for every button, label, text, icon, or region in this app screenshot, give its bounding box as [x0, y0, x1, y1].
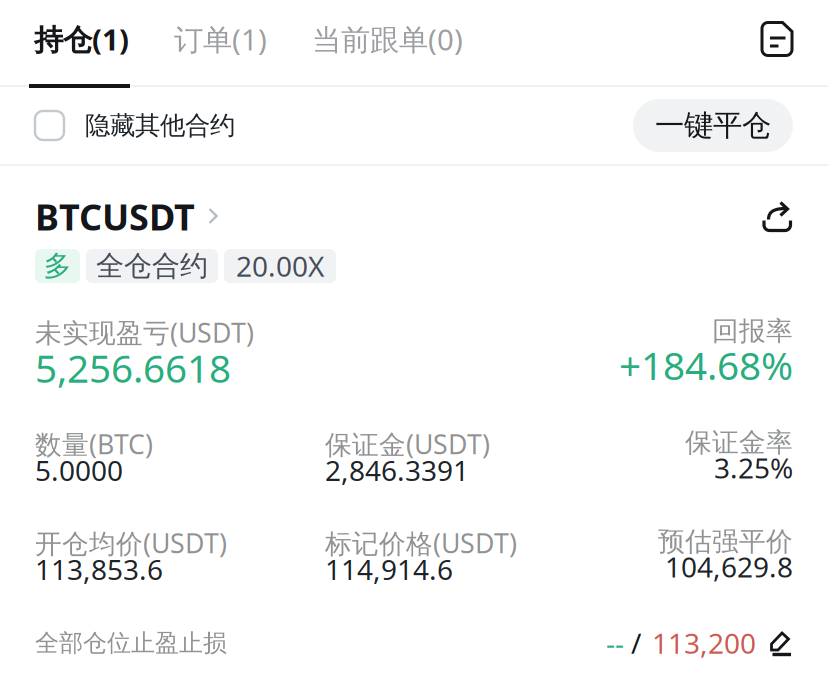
button[interactable]: Share	[762, 201, 793, 232]
staticText: 订单(1)	[174, 19, 267, 58]
staticText: 2,846.3391	[325, 452, 469, 489]
staticText: 数量(BTC)	[35, 426, 153, 462]
staticText: 全仓合约	[96, 249, 208, 283]
staticText: 104,629.8	[665, 548, 793, 585]
button[interactable]: --	[606, 624, 793, 662]
button[interactable]: 持仓(1)	[34, 19, 129, 58]
button[interactable]: 订单(1)	[174, 19, 267, 58]
staticText: BTCUSDT	[35, 193, 195, 240]
staticText: 保证金率	[685, 426, 793, 459]
staticText: 3.25%	[714, 449, 793, 486]
staticText: 回报率	[712, 315, 793, 347]
staticText: 113,853.6	[35, 551, 163, 588]
staticText: 预估强平价	[658, 525, 793, 558]
button[interactable]: 一键平仓	[633, 99, 793, 152]
button[interactable]: 当前跟单(0)	[312, 19, 463, 58]
staticText: 隐藏其他合约	[85, 110, 235, 141]
staticText: 20.00X	[236, 247, 324, 285]
staticText: 114,914.6	[325, 551, 453, 588]
staticText: 保证金(USDT)	[325, 426, 490, 462]
staticText: +184.68%	[619, 339, 793, 391]
staticText: 一键平仓	[655, 107, 771, 143]
button[interactable]: BTCUSDT	[35, 193, 219, 240]
staticText: 开仓均价(USDT)	[35, 525, 227, 561]
staticText: /	[631, 624, 641, 662]
staticText: 113,200	[652, 624, 756, 662]
staticText: 未实现盈亏(USDT)	[35, 315, 254, 350]
staticText: --	[606, 624, 624, 662]
staticText: 5.0000	[35, 452, 123, 489]
button[interactable]: 隐藏其他合约	[35, 110, 235, 141]
staticText: 当前跟单(0)	[312, 19, 463, 58]
staticText: 持仓(1)	[34, 19, 129, 58]
staticText: 全部仓位止盈止损	[35, 628, 227, 658]
staticText: 多	[43, 249, 71, 283]
button[interactable]: Order records	[760, 20, 794, 57]
staticText: 5,256.6618	[35, 342, 231, 393]
staticText: 标记价格(USDT)	[325, 525, 517, 561]
